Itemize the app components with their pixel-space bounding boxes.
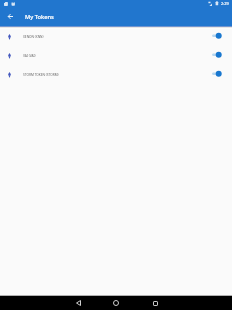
button[interactable]: Recent apps <box>142 296 168 310</box>
button[interactable]: Home <box>103 296 129 310</box>
button[interactable]: Toggle VAI (VAI) <box>210 45 232 64</box>
button[interactable]: Back <box>65 296 91 310</box>
button[interactable]: Toggle XENON (XNN) <box>210 26 232 45</box>
staticText: STORM TOKEN (STORM) <box>23 73 59 77</box>
staticText: VAI (VAI) <box>23 54 36 58</box>
button[interactable]: XENON (XNN) <box>0 26 232 45</box>
staticText: XENON (XNN) <box>23 35 44 39</box>
staticText: 2:29 <box>221 1 229 6</box>
button[interactable]: Navigate up <box>2 8 19 25</box>
button[interactable]: Toggle STORM TOKEN (STORM) <box>210 64 232 83</box>
button[interactable]: STORM TOKEN (STORM) <box>0 64 232 83</box>
staticText: My Tokens <box>25 13 54 21</box>
button[interactable]: VAI (VAI) <box>0 45 232 64</box>
